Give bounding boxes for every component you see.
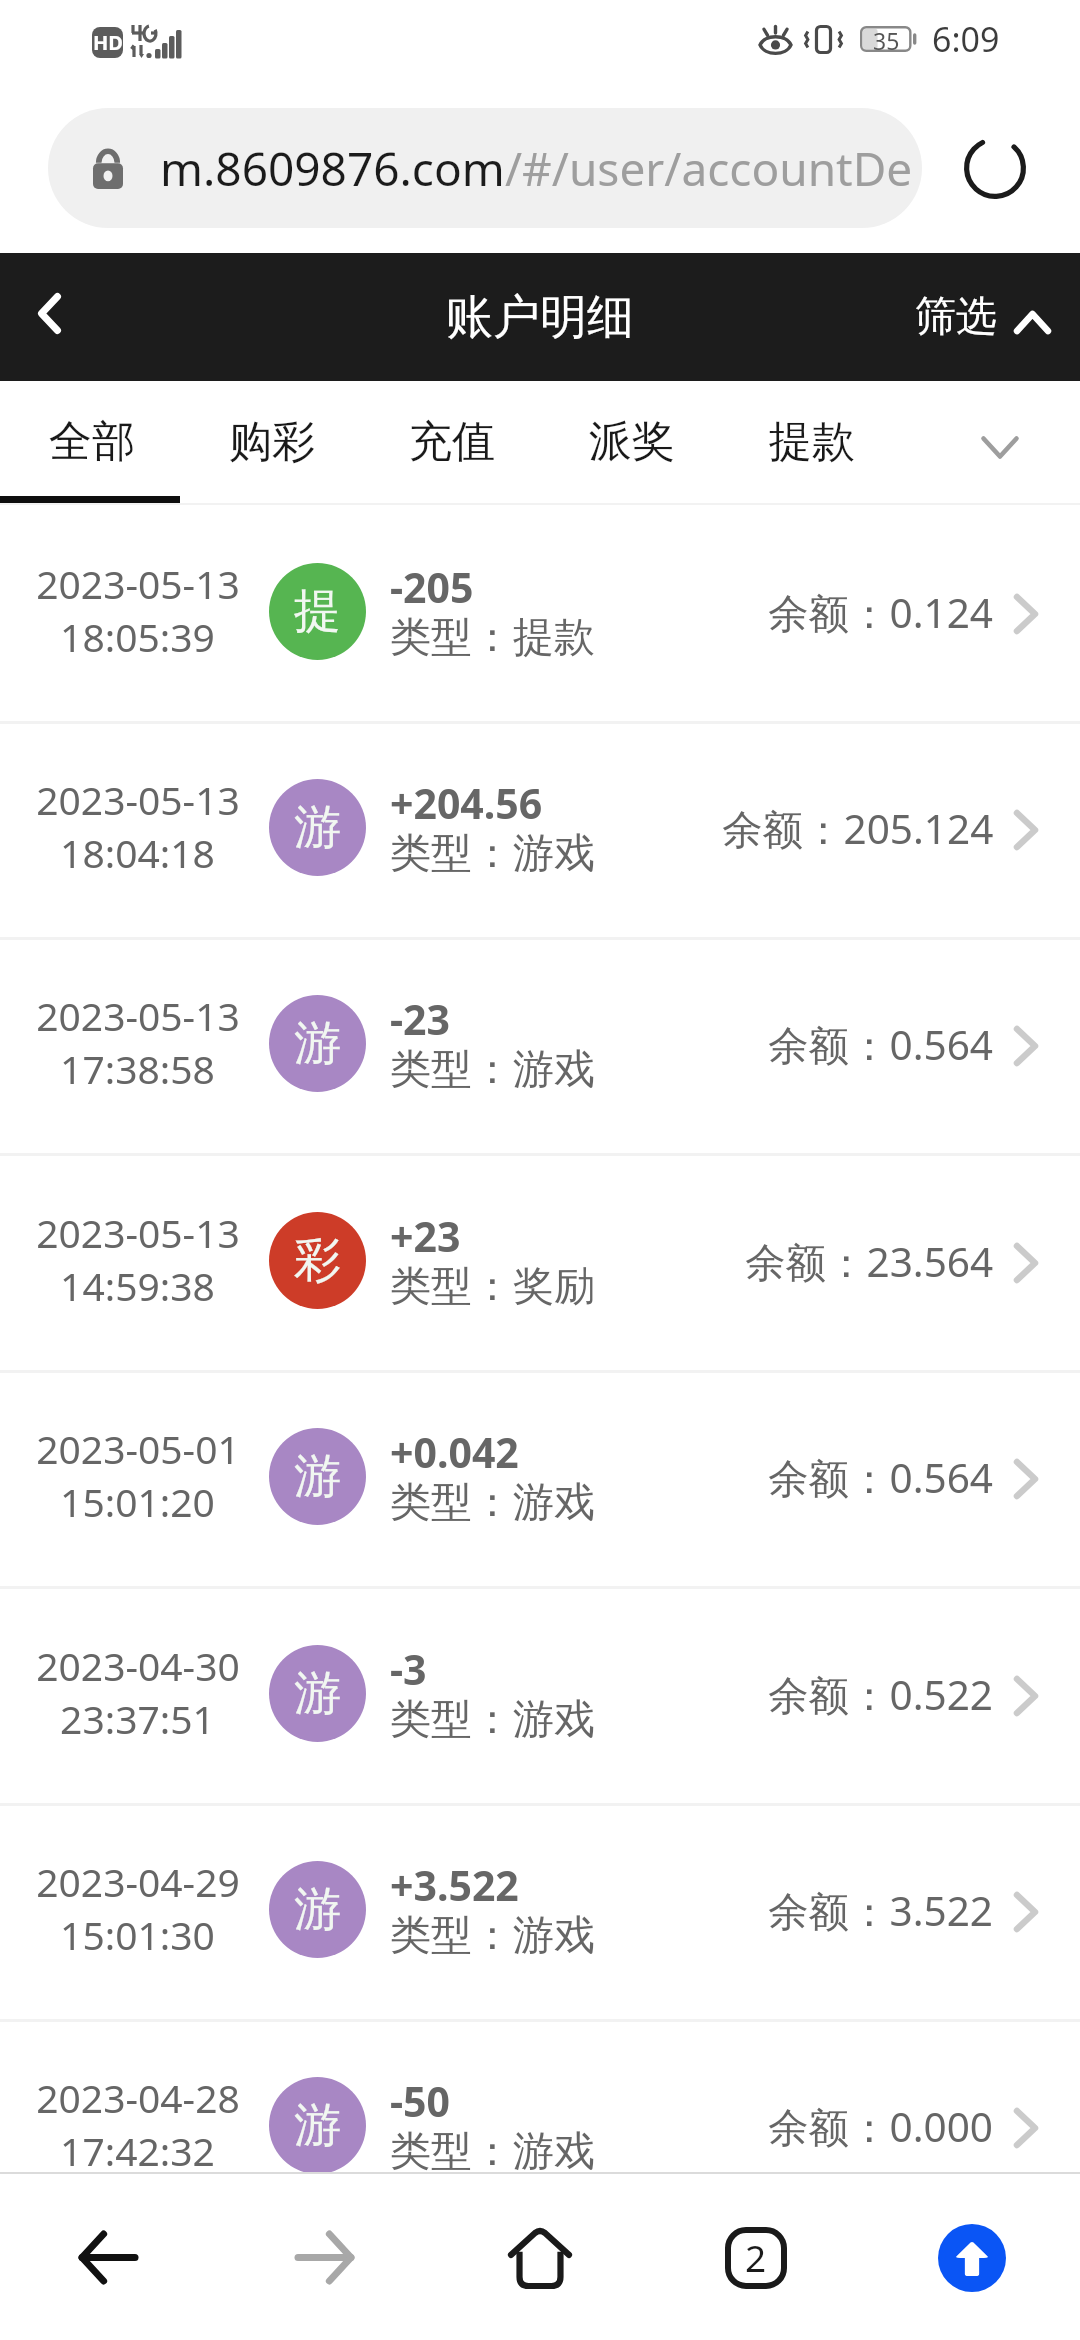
- staticText: +204.56: [390, 775, 543, 831]
- button[interactable]: 2023-04-30: [0, 1589, 1080, 1803]
- staticText: 类型：游戏: [390, 1477, 595, 1529]
- button[interactable]: 派奖: [542, 381, 722, 499]
- button[interactable]: 2023-05-13: [0, 939, 1080, 1153]
- staticText: +0.042: [390, 1424, 519, 1480]
- staticText: 类型：游戏: [390, 2126, 595, 2172]
- staticText: -23: [390, 991, 451, 1047]
- staticText: 余额：0.124: [768, 585, 994, 640]
- button[interactable]: Expand tabs: [940, 388, 1060, 506]
- staticText: 游: [294, 1447, 341, 1506]
- button[interactable]: Reload: [930, 105, 1060, 231]
- button[interactable]: 全部: [2, 381, 182, 499]
- staticText: 类型：游戏: [390, 828, 595, 880]
- staticText: 类型：游戏: [390, 1694, 595, 1746]
- button[interactable]: Back: [0, 253, 98, 381]
- staticText: 2023-05-13: [36, 989, 240, 1042]
- staticText: 15:01:30: [60, 1908, 215, 1961]
- staticText: 35: [873, 25, 900, 51]
- staticText: 类型：提款: [390, 612, 595, 664]
- staticText: 余额：0.522: [768, 1667, 994, 1722]
- button[interactable]: 2023-04-28: [0, 2021, 1080, 2172]
- staticText: 游: [294, 1880, 341, 1939]
- staticText: 彩: [294, 1231, 341, 1290]
- button[interactable]: 2023-05-01: [0, 1372, 1080, 1586]
- staticText: 全部: [49, 415, 135, 469]
- staticText: 余额：23.564: [745, 1234, 994, 1289]
- button[interactable]: 筛选: [915, 253, 1051, 381]
- button[interactable]: Back: [0, 2175, 216, 2340]
- button[interactable]: 2023-05-13: [0, 723, 1080, 937]
- staticText: -50: [390, 2073, 451, 2129]
- staticText: 2023-05-01: [36, 1422, 240, 1475]
- staticText: 2023-04-28: [36, 2071, 240, 2124]
- staticText: 游: [294, 798, 341, 857]
- button[interactable]: 2023-04-29: [0, 1805, 1080, 2019]
- staticText: 2023-05-13: [36, 1206, 240, 1259]
- staticText: +3.522: [390, 1857, 519, 1913]
- staticText: 账户明细: [446, 288, 634, 347]
- staticText: 派奖: [589, 415, 675, 469]
- staticText: 17:38:58: [60, 1042, 215, 1095]
- staticText: 14:59:38: [60, 1259, 215, 1312]
- staticText: 余额：0.564: [768, 1450, 994, 1505]
- staticText: 游: [294, 1014, 341, 1073]
- staticText: 余额：205.124: [722, 801, 994, 856]
- staticText: -205: [390, 559, 474, 615]
- staticText: 充值: [409, 415, 495, 469]
- staticText: HD: [93, 29, 123, 56]
- staticText: 游: [294, 2096, 341, 2155]
- staticText: 2: [745, 2232, 767, 2282]
- staticText: 17:42:32: [60, 2124, 215, 2172]
- staticText: 购彩: [229, 415, 315, 469]
- staticText: 2023-05-13: [36, 773, 240, 826]
- staticText: 游: [294, 1664, 341, 1723]
- staticText: 2023-04-30: [36, 1639, 240, 1692]
- staticText: 类型：奖励: [390, 1261, 595, 1313]
- staticText: 类型：游戏: [390, 1044, 595, 1096]
- staticText: 余额：3.522: [768, 1883, 994, 1938]
- staticText: 6:09: [932, 16, 1000, 62]
- staticText: +23: [390, 1208, 461, 1264]
- button[interactable]: 提款: [722, 381, 902, 499]
- staticText: 23:37:51: [60, 1692, 215, 1745]
- staticText: 15:01:20: [60, 1475, 215, 1528]
- button[interactable]: Home: [432, 2175, 648, 2340]
- button[interactable]: 2023-05-13: [0, 507, 1080, 721]
- staticText: 提款: [769, 415, 855, 469]
- staticText: 18:05:39: [60, 610, 215, 663]
- staticText: 余额：0.000: [768, 2099, 994, 2154]
- button[interactable]: Tabs: [648, 2175, 864, 2340]
- button[interactable]: 充值: [362, 381, 542, 499]
- staticText: 类型：游戏: [390, 1910, 595, 1962]
- button[interactable]: 购彩: [182, 381, 362, 499]
- staticText: m.8609876.com: [160, 137, 505, 200]
- staticText: 18:04:18: [60, 826, 215, 879]
- staticText: -3: [390, 1641, 427, 1697]
- staticText: /#/user/accountDe: [505, 137, 913, 200]
- button[interactable]: Scroll to top: [864, 2175, 1080, 2340]
- button[interactable]: Forward: [216, 2175, 432, 2340]
- button[interactable]: m.8609876.com: [48, 108, 922, 228]
- staticText: 余额：0.564: [768, 1017, 994, 1072]
- staticText: 筛选: [915, 291, 997, 343]
- button[interactable]: 2023-05-13: [0, 1156, 1080, 1370]
- staticText: 提: [294, 582, 341, 641]
- staticText: 2023-05-13: [36, 557, 240, 610]
- staticText: 2023-04-29: [36, 1855, 240, 1908]
